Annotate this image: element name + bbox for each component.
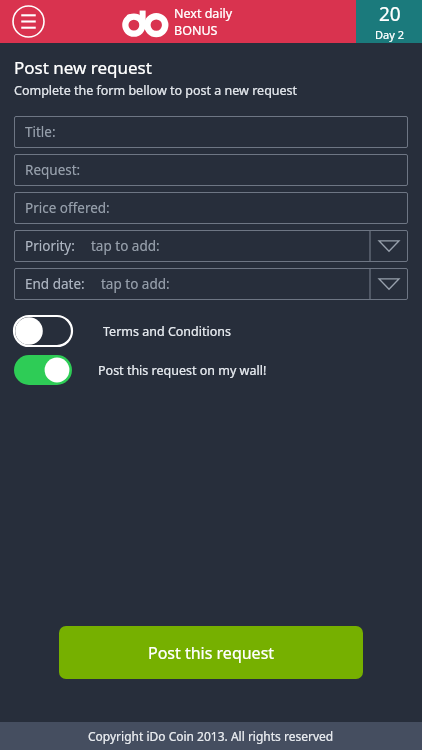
staticText: Post new request bbox=[14, 56, 152, 79]
staticText: Title: bbox=[25, 123, 56, 141]
staticText: tap to add: bbox=[101, 275, 170, 293]
staticText: Terms and Conditions bbox=[103, 323, 232, 340]
staticText: Price offered: bbox=[25, 199, 110, 217]
staticText: BONUS bbox=[174, 22, 218, 39]
button[interactable]: Menu bbox=[12, 5, 45, 38]
staticText: Post this request bbox=[148, 642, 275, 664]
staticText: 20 bbox=[379, 1, 401, 27]
staticText: Complete the form bellow to post a new r… bbox=[14, 82, 298, 99]
staticText: Request: bbox=[25, 161, 81, 179]
staticText: Priority: bbox=[25, 237, 75, 255]
button[interactable]: Price offered: bbox=[14, 192, 408, 224]
button[interactable]: Title: bbox=[14, 116, 408, 148]
staticText: Day 2 bbox=[375, 27, 404, 42]
button[interactable]: Request: bbox=[14, 154, 408, 186]
button[interactable]: Priority: bbox=[14, 230, 408, 262]
staticText: Post this request on my wall! bbox=[98, 362, 267, 379]
button[interactable]: 20 bbox=[356, 0, 422, 43]
button[interactable]: Terms and Conditions bbox=[14, 316, 422, 346]
staticText: End date: bbox=[25, 275, 85, 293]
staticText: Next daily bbox=[174, 5, 233, 22]
button[interactable]: Post this request bbox=[59, 626, 363, 679]
button[interactable]: Post this request on my wall! bbox=[14, 355, 422, 385]
staticText: Copyright iDo Coin 2013. All rights rese… bbox=[88, 728, 334, 744]
button[interactable]: End date: bbox=[14, 268, 408, 300]
staticText: tap to add: bbox=[91, 237, 160, 255]
